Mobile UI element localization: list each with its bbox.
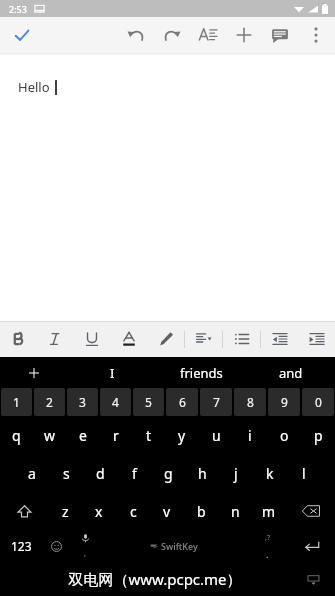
button[interactable]: o [267,416,301,454]
staticText: . [266,548,269,560]
button[interactable]: Backspace [286,492,335,530]
button[interactable]: p [301,416,335,454]
button[interactable]: 4 [100,388,131,416]
button[interactable]: Highlight [147,321,184,357]
staticText: x [95,502,103,521]
staticText: 123 [11,538,32,554]
staticText: 8 [247,394,254,410]
staticText: 双电网（www.pcpc.me） [68,569,242,589]
staticText: Hello [18,78,50,96]
button[interactable]: Bold [0,321,36,357]
button[interactable]: Add to dictionary [0,357,68,388]
button[interactable]: 123 [0,530,42,562]
button[interactable]: h [185,454,219,492]
staticText: p [314,426,323,445]
button[interactable]: Decrease indent [261,321,298,357]
staticText: q [12,426,21,445]
button[interactable]: Hello [0,56,335,321]
staticText: 3 [79,394,86,410]
button[interactable]: n [218,492,252,530]
button[interactable]: 2 [34,388,65,416]
button[interactable]: Space [100,530,247,562]
button[interactable]: s [49,454,83,492]
button[interactable]: 6 [166,388,198,416]
staticText: 5 [145,394,152,410]
staticText: 6 [179,394,186,410]
button[interactable]: 0 [302,388,334,416]
button[interactable]: r [99,416,132,454]
staticText: u [212,426,221,445]
button[interactable]: More options [298,17,334,53]
button[interactable]: Italic [36,321,73,357]
button[interactable]: j [219,454,253,492]
button[interactable]: Voice input [71,530,100,562]
button[interactable]: I [68,357,157,388]
button[interactable]: Redo [154,17,190,53]
button[interactable]: Text color [110,321,147,357]
button[interactable]: Punctuation [247,530,288,562]
button[interactable]: t [132,416,165,454]
button[interactable]: v [150,492,184,530]
staticText: SwiftKey [161,540,198,552]
button[interactable]: Increase indent [298,321,335,357]
button[interactable]: Text formatting [190,17,226,53]
staticText: v [163,502,171,521]
button[interactable]: b [184,492,218,530]
staticText: n [231,502,240,521]
button[interactable]: 5 [133,388,164,416]
button[interactable]: e [66,416,99,454]
staticText: h [198,464,207,483]
button[interactable]: q [0,416,33,454]
staticText: l [302,464,306,483]
button[interactable]: Comment [262,17,298,53]
button[interactable]: c [116,492,150,530]
staticText: s [63,464,70,483]
button[interactable]: friends [157,357,246,388]
staticText: 0 [315,394,322,410]
staticText: w [44,426,56,445]
button[interactable]: u [199,416,233,454]
button[interactable]: l [287,454,321,492]
button[interactable]: i [233,416,267,454]
button[interactable]: Alignment [185,321,222,357]
button[interactable]: 8 [234,388,266,416]
button[interactable]: 9 [268,388,300,416]
staticText: 2:53 [9,3,27,15]
button[interactable]: 3 [67,388,98,416]
button[interactable]: m [252,492,286,530]
button[interactable]: and [246,357,335,388]
staticText: g [164,464,173,483]
staticText: m [262,502,276,521]
staticText: e [79,426,87,445]
button[interactable]: w [33,416,66,454]
staticText: 7 [213,394,220,410]
button[interactable]: f [117,454,151,492]
button[interactable]: Done [7,20,37,50]
staticText: and [279,364,303,382]
button[interactable]: Underline [73,321,110,357]
button[interactable]: y [165,416,199,454]
button[interactable]: z [48,492,82,530]
button[interactable]: d [83,454,117,492]
button[interactable]: Shift [0,492,48,530]
button[interactable]: Insert [226,17,262,53]
staticText: 2 [46,394,53,410]
staticText: , [84,547,87,558]
button[interactable]: x [82,492,116,530]
button[interactable]: k [253,454,287,492]
button[interactable]: Emoji [42,530,71,562]
staticText: 9 [281,394,288,410]
button[interactable]: Enter [288,530,335,562]
staticText: ,? [265,533,270,543]
button[interactable]: a [14,454,49,492]
staticText: c [130,502,137,521]
button[interactable]: Bulleted list [223,321,260,357]
staticText: 1 [13,394,20,410]
button[interactable]: 1 [1,388,32,416]
button[interactable]: g [151,454,185,492]
staticText: j [234,464,238,483]
button[interactable]: 7 [200,388,232,416]
staticText: d [96,464,105,483]
button[interactable]: Undo [118,17,154,53]
staticText: i [248,426,252,445]
